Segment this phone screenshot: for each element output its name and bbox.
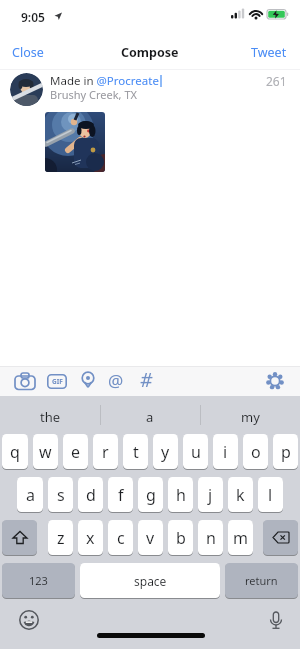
staticText: a [26,484,35,506]
staticText: my [241,408,260,426]
button[interactable]: Tweet [251,44,287,61]
button[interactable]: e [63,434,88,470]
button[interactable]: g [138,477,163,513]
staticText: 9:05 [21,9,45,25]
button[interactable]: h [168,477,193,513]
staticText: GIF [52,377,63,386]
button[interactable]: r [93,434,118,470]
staticText: # [140,367,153,393]
staticText: g [146,484,156,506]
staticText: d [86,484,96,506]
staticText: o [251,441,261,463]
staticText: s [57,484,65,506]
staticText: i [223,441,228,463]
button[interactable]: m [228,520,253,556]
staticText: Close [12,44,44,61]
button[interactable]: i [213,434,238,470]
button[interactable]: d [78,477,103,513]
staticText: space [134,573,167,589]
button[interactable]: w [33,434,58,470]
staticText: b [176,527,186,549]
button[interactable]: n [198,520,223,556]
button[interactable]: a [17,477,43,513]
button[interactable]: # [140,367,153,393]
button[interactable]: p [273,434,298,470]
staticText: t [133,441,139,463]
button[interactable]: GIF [47,374,67,389]
staticText: w [39,441,52,463]
button[interactable]: return [225,563,298,599]
button[interactable]: @ [108,369,124,392]
staticText: x [86,527,95,549]
button[interactable]: space [80,563,220,599]
button[interactable]: 123 [2,563,75,599]
button[interactable]: z [48,520,73,556]
staticText: 123 [29,573,48,588]
staticText: p [281,441,291,463]
staticText: the [40,408,61,426]
button[interactable]: j [198,477,223,513]
staticText: Compose [121,44,179,61]
button[interactable]: a [100,396,200,433]
staticText: v [146,527,155,549]
button[interactable] [2,520,37,556]
button[interactable]: my [200,396,300,433]
button[interactable]: u [183,434,208,470]
button[interactable] [264,370,286,392]
staticText: j [208,484,213,506]
button[interactable]: b [168,520,193,556]
staticText: m [233,527,248,549]
staticText: z [57,527,65,549]
button[interactable]: o [243,434,268,470]
button[interactable] [14,372,36,390]
button[interactable]: s [48,477,73,513]
button[interactable]: l [258,477,283,513]
staticText: y [161,441,170,463]
staticText: Brushy Creek, TX [50,87,137,102]
staticText: n [206,527,216,549]
staticText: a [146,408,154,426]
staticText: 261 [266,73,287,89]
staticText: f [118,484,124,506]
button[interactable]: the [0,396,100,433]
button[interactable]: c [108,520,133,556]
staticText: q [10,441,20,463]
button[interactable] [269,611,283,633]
button[interactable]: y [153,434,178,470]
button[interactable]: v [138,520,163,556]
staticText: Made in @Procreate [50,73,159,89]
staticText: c [117,527,125,549]
button[interactable]: q [2,434,28,470]
staticText: k [236,484,245,506]
staticText: l [268,484,273,506]
staticText: e [71,441,81,463]
button[interactable]: k [228,477,253,513]
button[interactable] [80,371,96,391]
staticText: return [245,573,278,588]
staticText: Tweet [251,44,287,61]
button[interactable]: Close [12,44,44,61]
button[interactable]: x [78,520,103,556]
button[interactable]: f [108,477,133,513]
button[interactable] [263,520,298,556]
staticText: r [102,441,109,463]
button[interactable] [19,610,39,630]
button[interactable]: t [123,434,148,470]
staticText: @ [108,369,124,392]
staticText: h [176,484,186,506]
staticText: u [191,441,201,463]
